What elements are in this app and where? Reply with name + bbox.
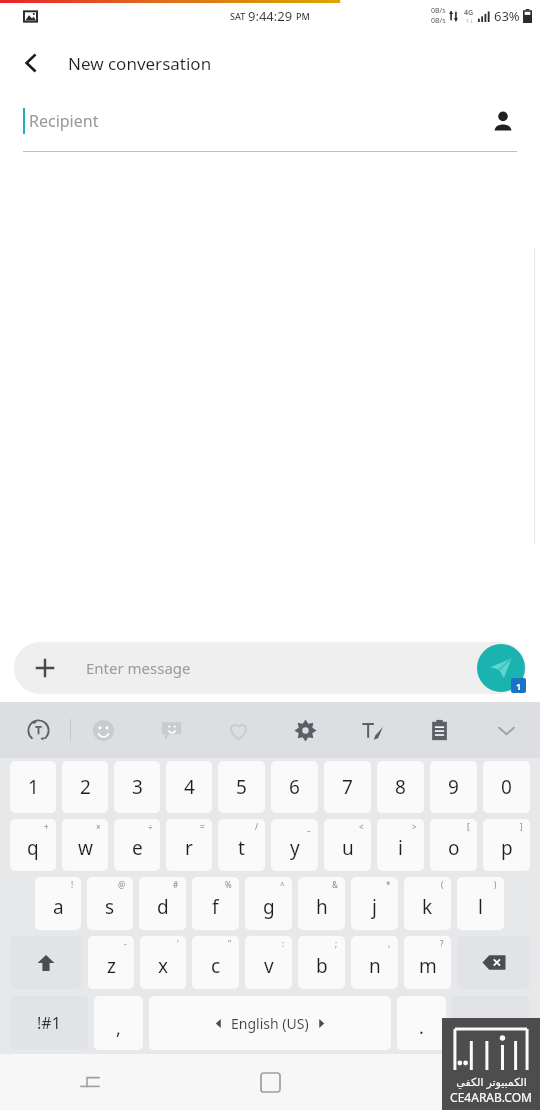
button[interactable]: 9 [430,761,477,813]
button[interactable]: Send [477,644,525,692]
button[interactable]: Hide keyboard [360,1054,540,1110]
button[interactable]: & [298,877,345,930]
staticText: # [173,879,179,890]
staticText: ; [335,938,338,949]
button[interactable]: Translate [18,710,58,750]
button[interactable]: ' [140,936,186,989]
button[interactable]: 4 [166,761,212,813]
staticText: 7 [342,774,353,800]
staticText: English (US) [231,1014,309,1033]
button[interactable]: > [377,819,424,871]
button[interactable]: Space, English (US) [149,996,391,1050]
button[interactable]: !#1 [10,996,88,1050]
button[interactable]: ! [35,877,81,930]
button[interactable]: Settings [285,710,325,750]
staticText: 2 [80,774,91,800]
button[interactable]: 3 [114,761,160,813]
button[interactable]: 0 [483,761,530,813]
staticText: SAT [230,10,248,22]
button[interactable]: Emoji [83,710,123,750]
button[interactable]: # [139,877,186,930]
staticText: s [105,894,115,920]
staticText: 9:44:29 [248,7,296,25]
staticText: Enter message [86,658,191,678]
button[interactable]: - [88,936,134,989]
button[interactable]: 5 [218,761,265,813]
staticText: New conversation [68,52,212,75]
staticText: : [282,938,285,949]
button[interactable]: Add contact [484,102,522,140]
button[interactable]: / [218,819,265,871]
button[interactable]: @ [87,877,133,930]
staticText: 0 [501,774,512,800]
staticText: 0B/s [431,6,446,16]
staticText: 6 [289,774,300,800]
button[interactable]: Shift [10,936,82,989]
staticText: b [316,953,328,979]
button[interactable]: " [192,936,239,989]
button[interactable]: Attach [14,642,526,694]
button[interactable]: = [166,819,212,871]
staticText: a [53,894,64,920]
staticText: !#1 [37,1012,61,1034]
button[interactable]: Home [180,1054,360,1110]
button[interactable]: % [192,877,239,930]
button[interactable]: ? [404,936,451,989]
staticText: _ [307,821,311,832]
staticText: 4G [464,8,474,18]
staticText: Next [475,1013,508,1033]
button[interactable]: Back [8,40,54,86]
button[interactable]: Clipboard [419,710,459,750]
staticText: ^ [280,879,285,890]
button[interactable]: ] [483,819,530,871]
button[interactable]: Favorites [218,710,258,750]
staticText: o [448,835,460,861]
staticText: x [158,953,169,979]
button[interactable]: + [10,819,56,871]
staticText: % [225,879,232,890]
button[interactable]: _ [271,819,318,871]
staticText: * [386,879,391,890]
button[interactable]: Attach [28,651,62,685]
button[interactable]: * [351,877,398,930]
staticText: ÷ [148,821,153,832]
button[interactable]: Backspace [457,936,530,989]
staticText: & [332,879,338,890]
button[interactable]: Stickers [151,710,191,750]
button[interactable]: ) [457,877,504,930]
button[interactable]: 2 [62,761,108,813]
button[interactable]: : [245,936,292,989]
button[interactable]: ÷ [114,819,160,871]
button[interactable]: , [94,996,143,1050]
staticText: / [255,821,258,832]
button[interactable]: ( [404,877,451,930]
button[interactable]: Recents [0,1054,180,1110]
button[interactable]: < [324,819,371,871]
button[interactable]: ; [298,936,345,989]
button[interactable]: 1 [10,761,56,813]
staticText: ) [494,879,497,890]
button[interactable]: Text edit [352,710,392,750]
staticText: > [412,821,417,832]
button[interactable]: 8 [377,761,424,813]
staticText: j [372,894,377,920]
button[interactable]: 6 [271,761,318,813]
staticText: l [478,894,483,920]
staticText: d [157,894,169,920]
button[interactable]: , [351,936,398,989]
staticText: k [422,894,433,920]
staticText: 9 [448,774,459,800]
staticText: @ [118,879,126,890]
button[interactable]: × [62,819,108,871]
button[interactable]: 7 [324,761,371,813]
staticText: ? [440,938,444,949]
button[interactable]: ^ [245,877,292,930]
staticText: p [501,835,513,861]
button[interactable]: Next [452,996,530,1050]
button[interactable]: . [397,996,446,1050]
button[interactable]: More [486,710,526,750]
staticText: 3 [132,774,143,800]
staticText: < [359,821,364,832]
button[interactable]: [ [430,819,477,871]
staticText: n [369,953,381,979]
